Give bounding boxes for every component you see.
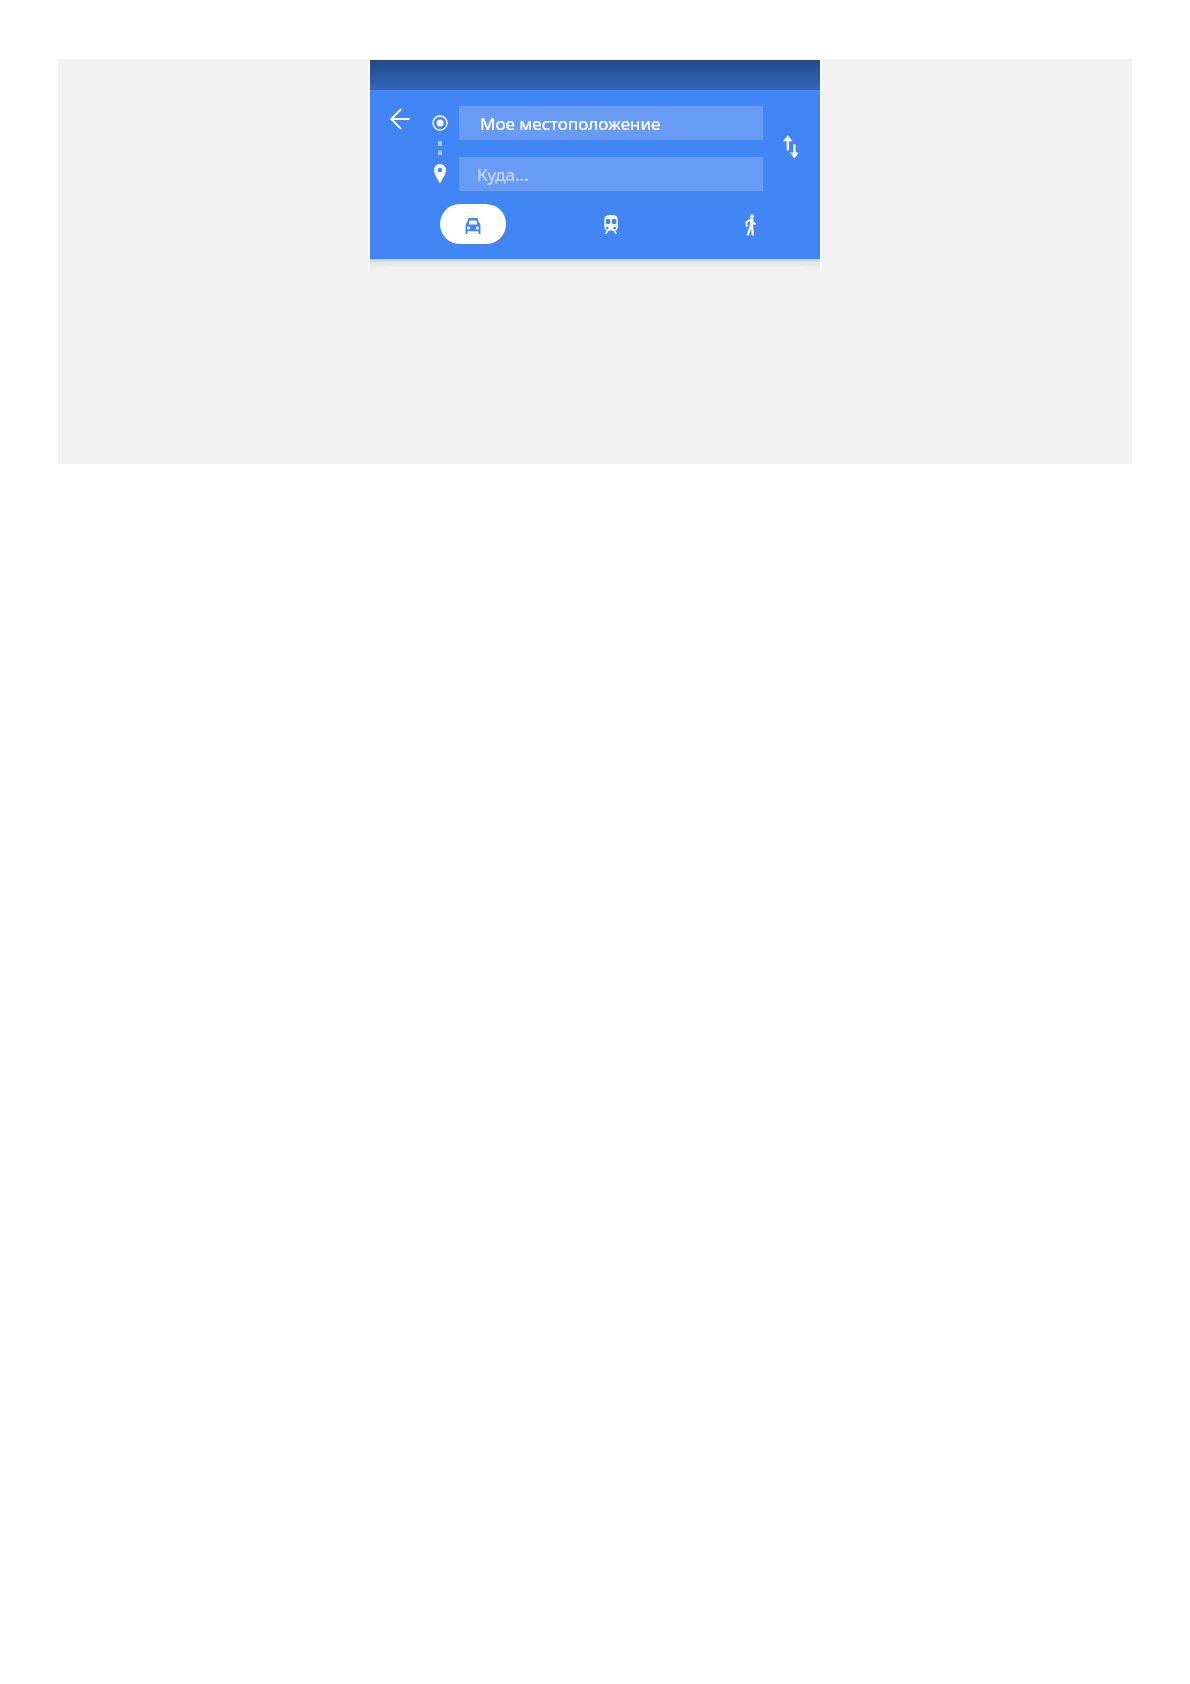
button[interactable]: Back: [381, 100, 419, 138]
staticText: Куда...: [477, 163, 529, 186]
button[interactable]: Мое местоположение: [459, 106, 763, 140]
button[interactable]: Driving: [440, 204, 506, 244]
staticText: Мое местоположение: [480, 112, 661, 135]
button[interactable]: Walking: [708, 204, 794, 244]
button[interactable]: Transit: [568, 204, 654, 244]
button[interactable]: Swap origin and destination: [774, 130, 808, 164]
button[interactable]: Куда...: [459, 157, 763, 191]
